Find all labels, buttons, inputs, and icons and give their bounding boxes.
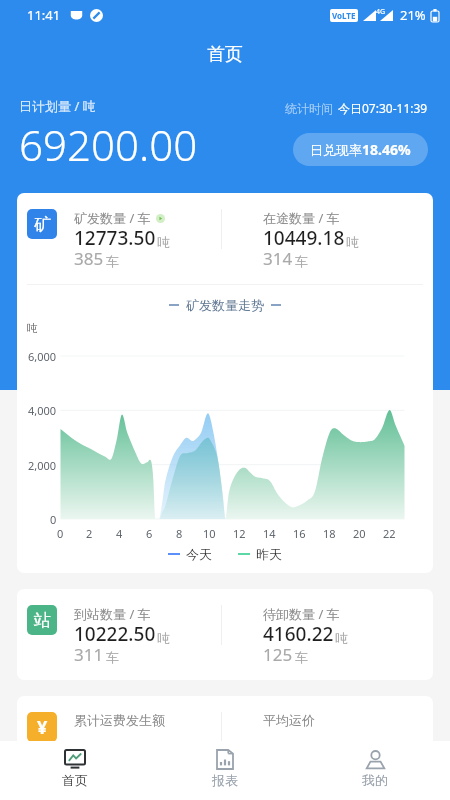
- staticText: 矿: [34, 214, 51, 235]
- staticText: 11:41: [27, 6, 61, 24]
- staticText: 21%: [400, 6, 426, 24]
- staticText: 4,000: [28, 403, 57, 418]
- staticText: 20: [353, 526, 366, 541]
- staticText: 4G: [376, 7, 386, 17]
- staticText: 8: [176, 526, 183, 541]
- staticText: VoLTE: [332, 10, 356, 21]
- staticText: 昨天: [256, 546, 282, 562]
- staticText: 我的: [362, 772, 388, 788]
- staticText: 车: [106, 649, 119, 665]
- button[interactable]: 日兑现率: [293, 133, 428, 166]
- staticText: 车: [295, 253, 308, 269]
- staticText: 2: [86, 526, 93, 541]
- staticText: 日兑现率: [310, 142, 362, 158]
- staticText: 吨: [335, 630, 348, 646]
- staticText: 统计时间: [285, 101, 333, 116]
- button[interactable]: 我的: [300, 741, 450, 796]
- staticText: 矿发数量 / 车: [74, 209, 151, 227]
- staticText: 平均运价: [263, 712, 315, 728]
- staticText: 18.46%: [362, 140, 411, 159]
- staticText: 10449.18: [263, 225, 345, 251]
- staticText: 车: [295, 649, 308, 665]
- staticText: 10: [203, 526, 216, 541]
- staticText: 22: [383, 526, 396, 541]
- staticText: 2,000: [28, 458, 57, 473]
- staticText: 18: [323, 526, 336, 541]
- staticText: 矿发数量走势: [186, 297, 264, 313]
- staticText: 在途数量 / 车: [263, 209, 340, 227]
- staticText: 吨: [157, 234, 170, 250]
- staticText: 待卸数量 / 车: [263, 605, 340, 623]
- staticText: 14: [263, 526, 276, 541]
- staticText: 首页: [62, 772, 88, 788]
- staticText: 吨: [157, 630, 170, 646]
- staticText: 4: [116, 526, 123, 541]
- staticText: 累计运费发生额: [74, 712, 165, 728]
- button[interactable]: 报表: [150, 741, 300, 796]
- staticText: 车: [106, 253, 119, 269]
- staticText: 日计划量 / 吨: [19, 97, 96, 115]
- staticText: 12: [233, 526, 246, 541]
- staticText: 4160.22: [263, 621, 334, 647]
- button[interactable]: 首页: [0, 741, 150, 796]
- staticText: 12773.50: [74, 225, 156, 251]
- staticText: 6: [146, 526, 153, 541]
- staticText: 311: [74, 643, 104, 666]
- staticText: 今天: [186, 546, 212, 562]
- staticText: 125: [263, 643, 293, 666]
- staticText: 0: [57, 526, 64, 541]
- staticText: 到站数量 / 车: [74, 605, 151, 623]
- staticText: 10222.50: [74, 621, 156, 647]
- staticText: ¥: [37, 715, 48, 740]
- staticText: 吨: [346, 234, 359, 250]
- staticText: 站: [34, 610, 51, 631]
- staticText: 今日07:30-11:39: [338, 100, 428, 116]
- staticText: 385: [74, 247, 104, 270]
- staticText: 0: [50, 512, 57, 527]
- staticText: 314: [263, 247, 293, 270]
- staticText: 报表: [212, 772, 238, 788]
- staticText: 16: [293, 526, 306, 541]
- staticText: 6,000: [28, 349, 57, 364]
- staticText: 69200.00: [19, 116, 198, 173]
- staticText: 首页: [207, 43, 243, 66]
- staticText: 吨: [27, 321, 38, 335]
